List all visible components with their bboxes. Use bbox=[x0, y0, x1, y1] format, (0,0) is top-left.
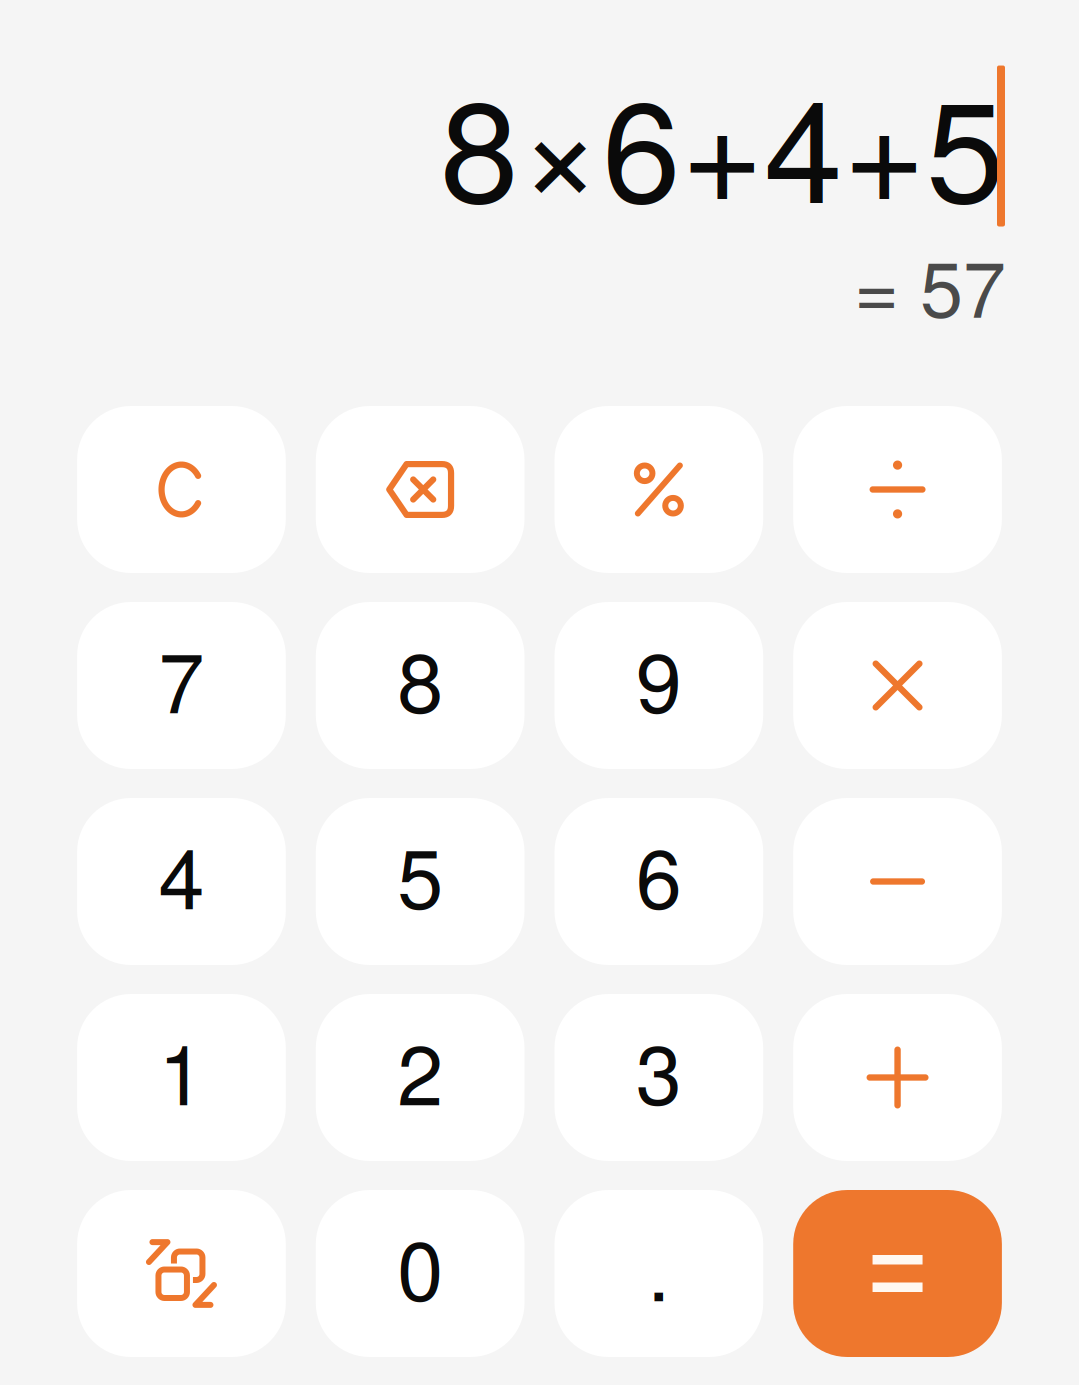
button[interactable]: Clear bbox=[77, 406, 286, 573]
button[interactable]: Multiply bbox=[793, 602, 1002, 769]
staticText: 0 bbox=[397, 1206, 443, 1325]
staticText: . bbox=[647, 1206, 670, 1325]
staticText: 1 bbox=[158, 1010, 204, 1129]
button[interactable]: 1 bbox=[77, 994, 286, 1161]
button[interactable]: Backspace bbox=[316, 406, 524, 573]
button[interactable]: 8 bbox=[316, 602, 524, 769]
staticText: 5 bbox=[397, 814, 443, 933]
button[interactable]: 3 bbox=[554, 994, 763, 1161]
button[interactable]: . bbox=[554, 1190, 763, 1357]
button[interactable]: 9 bbox=[554, 602, 763, 769]
staticText: 3 bbox=[636, 1010, 682, 1129]
staticText: 4 bbox=[158, 814, 204, 933]
button[interactable]: 6 bbox=[554, 798, 763, 965]
staticText: 8×6+4+5 bbox=[440, 41, 1005, 243]
staticText: 2 bbox=[397, 1010, 443, 1129]
staticText: 9 bbox=[636, 618, 682, 737]
button[interactable]: 5 bbox=[316, 798, 524, 965]
button[interactable]: Percent bbox=[554, 406, 763, 573]
button[interactable]: Divide bbox=[793, 406, 1002, 573]
staticText: 8 bbox=[397, 618, 443, 737]
button[interactable]: Subtract bbox=[793, 798, 1002, 965]
button[interactable]: Add bbox=[793, 994, 1002, 1161]
button[interactable]: 4 bbox=[77, 798, 286, 965]
button[interactable]: Convert units bbox=[77, 1190, 286, 1357]
button[interactable]: 7 bbox=[77, 602, 286, 769]
staticText: 7 bbox=[158, 618, 204, 737]
staticText: = 57 bbox=[854, 229, 1006, 340]
button[interactable]: 0 bbox=[316, 1190, 524, 1357]
button[interactable]: 2 bbox=[316, 994, 524, 1161]
button[interactable]: Equals bbox=[793, 1190, 1002, 1357]
staticText: 6 bbox=[636, 814, 682, 933]
